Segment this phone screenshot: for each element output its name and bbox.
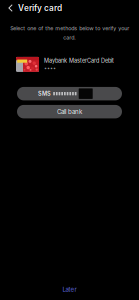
staticText: Call bank <box>57 108 82 115</box>
button[interactable]: Verify card <box>0 0 139 16</box>
button[interactable]: SMS <box>17 87 122 100</box>
button[interactable]: Call bank <box>17 105 122 118</box>
staticText: Later <box>62 286 76 293</box>
staticText: Select one of the methods below to verif… <box>10 25 129 41</box>
staticText: SMS <box>38 90 51 97</box>
staticText: Verify card <box>18 3 62 13</box>
staticText: Maybank MasterCard Debit <box>44 57 114 64</box>
staticText: •••• <box>44 65 56 71</box>
button[interactable]: Later <box>0 284 139 295</box>
